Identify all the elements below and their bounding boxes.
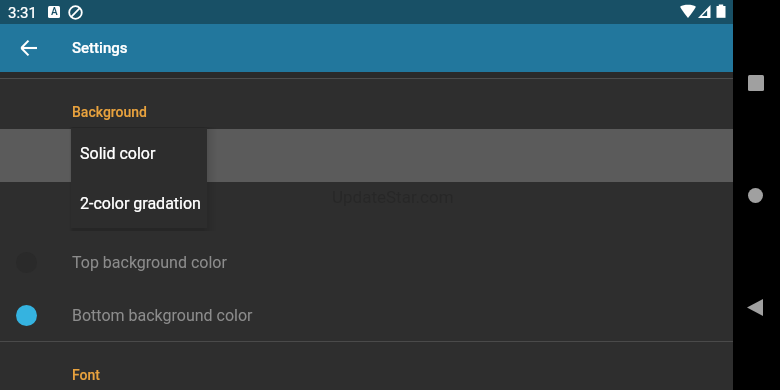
button[interactable]: Home: [748, 188, 763, 203]
button[interactable]: [0, 129, 733, 182]
button[interactable]: Top background color: [0, 236, 733, 289]
staticText: Background: [72, 104, 147, 120]
button[interactable]: Navigate up: [4, 24, 52, 72]
button[interactable]: Back: [747, 299, 763, 316]
staticText: 2-color gradation: [80, 194, 201, 213]
staticText: Top background color: [72, 253, 227, 272]
staticText: 3:31: [8, 4, 37, 22]
staticText: A: [51, 6, 58, 18]
button[interactable]: 2-color gradation: [71, 178, 207, 228]
button[interactable]: Solid color: [71, 128, 207, 178]
staticText: Bottom background color: [72, 306, 253, 325]
button[interactable]: Bottom background color: [0, 289, 733, 342]
staticText: Solid color: [80, 144, 156, 163]
staticText: Font: [72, 367, 100, 383]
staticText: Settings: [72, 39, 128, 57]
button[interactable]: Recent apps: [748, 75, 764, 91]
